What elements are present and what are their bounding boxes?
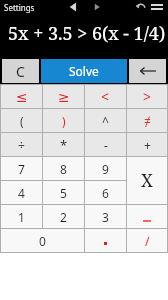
- button[interactable]: C: [2, 59, 39, 83]
- button[interactable]: 1: [1, 205, 42, 228]
- staticText: 0: [39, 233, 46, 249]
- staticText: 5x + 3.5 > 6(x - 1/4): [8, 21, 166, 46]
- button[interactable]: [90, 0, 104, 14]
- staticText: 1: [18, 209, 25, 225]
- button[interactable]: 6: [85, 181, 126, 204]
- staticText: /: [145, 233, 150, 249]
- staticText: ≤: [16, 89, 28, 105]
- staticText: ≥: [58, 89, 70, 105]
- button[interactable]: [129, 59, 166, 83]
- button[interactable]: <: [85, 85, 126, 108]
- button[interactable]: ): [43, 109, 84, 132]
- staticText: ^: [102, 113, 109, 129]
- button[interactable]: (: [1, 109, 42, 132]
- staticText: Solve: [69, 63, 99, 79]
- button[interactable]: 4: [1, 181, 42, 204]
- button[interactable]: [85, 229, 126, 252]
- button[interactable]: *: [43, 133, 84, 156]
- staticText: 7: [18, 161, 25, 177]
- button[interactable]: X: [127, 157, 167, 204]
- staticText: C: [16, 62, 25, 81]
- staticText: >: [143, 87, 152, 106]
- button[interactable]: 8: [43, 157, 84, 180]
- button[interactable]: -: [85, 133, 126, 156]
- staticText: 3: [102, 209, 109, 225]
- staticText: ÷: [18, 137, 25, 153]
- button[interactable]: 5: [43, 181, 84, 204]
- staticText: *: [60, 136, 68, 154]
- button[interactable]: ≠: [127, 109, 167, 132]
- staticText: 2: [60, 209, 67, 225]
- button[interactable]: ÷: [1, 133, 42, 156]
- button[interactable]: 2: [43, 205, 84, 228]
- button[interactable]: [134, 0, 148, 14]
- button[interactable]: [127, 205, 167, 228]
- staticText: 6: [102, 185, 109, 201]
- button[interactable]: [66, 0, 80, 14]
- button[interactable]: >: [127, 85, 167, 108]
- button[interactable]: ^: [85, 109, 126, 132]
- button[interactable]: [148, 0, 166, 14]
- button[interactable]: Solve: [41, 59, 127, 83]
- button[interactable]: /: [127, 229, 167, 252]
- staticText: (: [20, 113, 24, 129]
- staticText: 8: [60, 161, 67, 177]
- staticText: ): [62, 113, 66, 129]
- staticText: +: [144, 137, 151, 153]
- button[interactable]: Settings: [0, 2, 35, 13]
- staticText: 5: [60, 185, 67, 201]
- staticText: 9: [102, 161, 109, 177]
- staticText: ≠: [144, 113, 151, 129]
- staticText: X: [141, 168, 153, 193]
- staticText: -: [104, 137, 108, 153]
- button[interactable]: 3: [85, 205, 126, 228]
- button[interactable]: 7: [1, 157, 42, 180]
- staticText: 4: [18, 185, 25, 201]
- button[interactable]: ≤: [1, 85, 42, 108]
- button[interactable]: 9: [85, 157, 126, 180]
- button[interactable]: ≥: [43, 85, 84, 108]
- staticText: <: [101, 87, 110, 106]
- button[interactable]: 0: [1, 229, 84, 252]
- button[interactable]: +: [127, 133, 167, 156]
- staticText: Settings: [4, 2, 35, 13]
